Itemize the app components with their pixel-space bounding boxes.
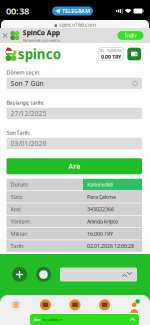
button[interactable]: Close banner <box>0 28 10 43</box>
button[interactable]: 03/01/2026 <box>6 138 142 149</box>
staticText: 00:38 <box>6 5 29 17</box>
staticText: Kod: <box>10 206 20 213</box>
button[interactable]: 27/12/2025 <box>6 108 142 119</box>
staticText: Ece <box>34 317 40 322</box>
staticText: 02.01.2026 12:06:28 <box>87 242 134 250</box>
staticText: ID: 14268166 <box>100 48 122 53</box>
staticText: Dönem seçin: <box>6 69 39 76</box>
button[interactable]: Profile <box>119 298 149 318</box>
button[interactable]: Live <box>60 298 90 318</box>
staticText: Başlangıç tarihi: <box>6 99 43 106</box>
staticText: TELEGRAM <box>62 7 90 15</box>
staticText: Son Tarih: <box>6 129 29 136</box>
button[interactable]: Son 7 Gün <box>6 78 142 89</box>
staticText: Kabul edildi <box>87 181 113 188</box>
button[interactable]: Language selector <box>60 267 137 281</box>
button[interactable]: İndir <box>117 31 143 40</box>
staticText: Son 7 Gün <box>10 79 43 88</box>
staticText: Türü: <box>10 193 22 200</box>
button[interactable]: ID: 14268166 <box>98 48 124 60</box>
staticText: 0.00 TRY <box>101 53 121 60</box>
button[interactable]: Ara <box>6 158 142 174</box>
staticText: Kazanmak için indirin <box>23 37 60 43</box>
staticText: 16.000 TRY <box>87 230 113 237</box>
staticText: Ara <box>68 162 80 171</box>
button[interactable]: Deposit <box>127 48 141 60</box>
staticText: Tarih: <box>10 242 23 250</box>
button[interactable]: spinco home <box>5 45 61 63</box>
staticText: SpinCo App <box>23 28 60 37</box>
staticText: spinco166.com <box>59 21 96 28</box>
staticText: ile sohbet et <box>42 317 62 322</box>
button[interactable]: Chat <box>30 314 139 325</box>
button[interactable]: Casino <box>90 298 119 318</box>
button[interactable]: Games <box>31 298 60 318</box>
staticText: Anında kripto <box>87 218 118 225</box>
staticText: spinco <box>18 45 61 63</box>
staticText: 343022366 <box>87 206 114 213</box>
staticText: Durum: <box>10 181 28 188</box>
staticText: 03/01/2026 <box>10 139 46 148</box>
staticText: Yöntem: <box>10 218 30 225</box>
staticText: Miktar: <box>10 230 27 237</box>
button[interactable]: Support <box>36 267 51 282</box>
button[interactable]: Add <box>12 267 27 282</box>
staticText: İndir <box>124 32 136 39</box>
button[interactable]: Menu <box>1 298 31 318</box>
staticText: 27/12/2025 <box>10 109 46 118</box>
staticText: Para Çekme <box>87 193 116 200</box>
